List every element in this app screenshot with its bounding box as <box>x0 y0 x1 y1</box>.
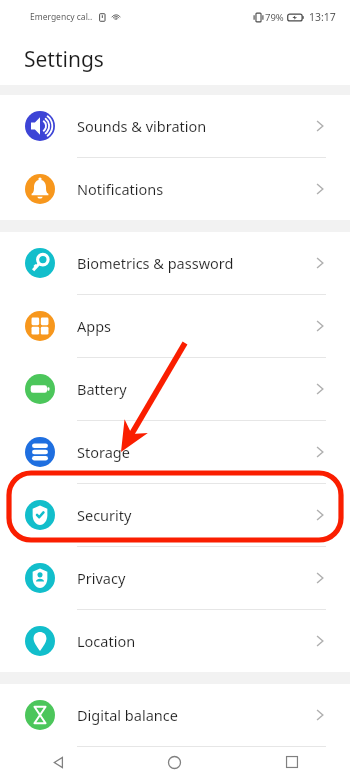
staticText: 79% <box>265 11 284 24</box>
button[interactable]: Sounds & vibration <box>0 95 350 157</box>
button[interactable]: Biometrics & password <box>0 232 350 294</box>
staticText: Location <box>77 631 313 651</box>
button[interactable]: Back <box>0 747 116 777</box>
staticText: Privacy <box>77 568 313 588</box>
staticText: Battery <box>77 379 313 399</box>
staticText: Sounds & vibration <box>77 116 313 136</box>
staticText: 13:17 <box>309 10 336 24</box>
button[interactable]: Privacy <box>0 547 350 609</box>
staticText: Notifications <box>77 179 313 199</box>
staticText: Emergency cal.. <box>30 11 93 23</box>
staticText: Biometrics & password <box>77 253 313 273</box>
button[interactable]: Security <box>0 484 350 546</box>
staticText: Security <box>77 505 313 525</box>
button[interactable]: Location <box>0 610 350 672</box>
button[interactable]: Notifications <box>0 158 350 220</box>
button[interactable]: Recents <box>233 747 350 777</box>
button[interactable]: Home <box>116 747 233 777</box>
button[interactable]: Digital balance <box>0 684 350 746</box>
staticText: Storage <box>77 442 313 462</box>
staticText: Digital balance <box>77 705 313 725</box>
button[interactable]: Battery <box>0 358 350 420</box>
button[interactable]: Apps <box>0 295 350 357</box>
staticText: Settings <box>24 45 104 74</box>
button[interactable]: Storage <box>0 421 350 483</box>
staticText: Apps <box>77 316 313 336</box>
